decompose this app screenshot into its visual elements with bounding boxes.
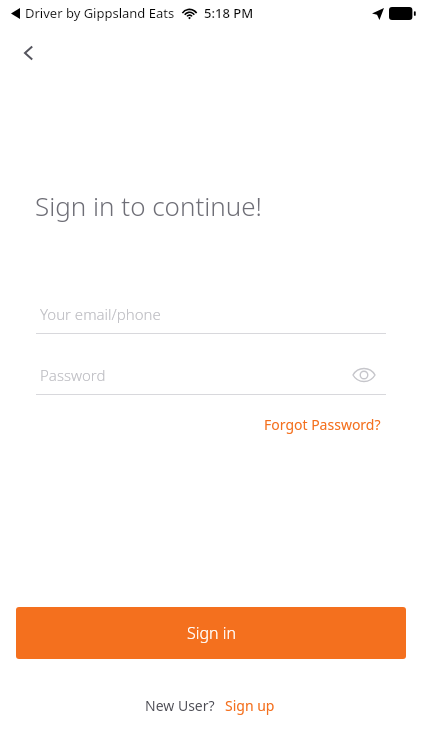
- staticText: Sign in to continue!: [35, 188, 262, 223]
- button[interactable]: Show password: [346, 357, 382, 393]
- button[interactable]: Forgot Password?: [258, 412, 387, 437]
- button[interactable]: Password: [36, 359, 386, 395]
- staticText: New User?: [145, 696, 215, 715]
- staticText: 5:18 PM: [204, 4, 254, 22]
- button[interactable]: Your email/phone: [36, 298, 386, 334]
- staticText: Driver by Gippsland Eats: [25, 4, 175, 22]
- staticText: Sign in: [187, 622, 236, 644]
- button[interactable]: Sign up: [223, 694, 277, 717]
- staticText: Sign up: [225, 696, 275, 715]
- staticText: Your email/phone: [40, 304, 161, 324]
- staticText: Forgot Password?: [264, 415, 381, 434]
- button[interactable]: Sign in: [16, 607, 406, 659]
- staticText: Password: [40, 365, 106, 385]
- button[interactable]: Back: [10, 34, 48, 72]
